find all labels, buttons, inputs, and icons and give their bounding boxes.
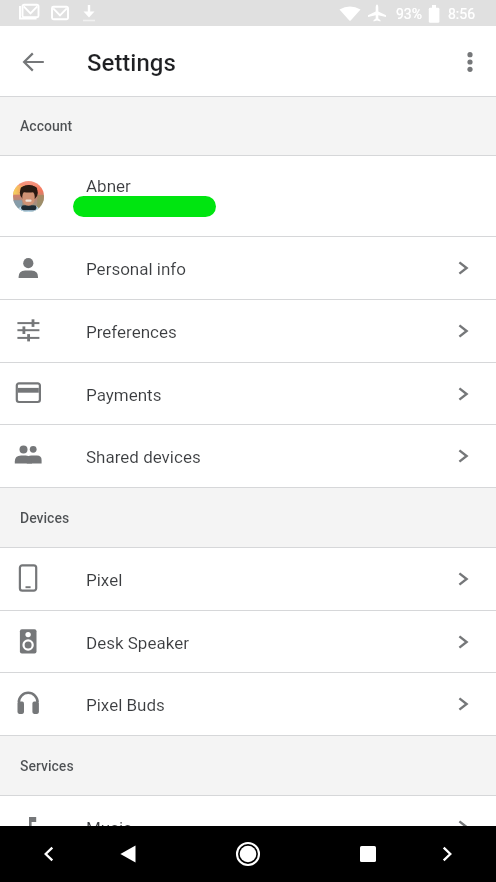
staticText: Settings bbox=[87, 49, 176, 77]
staticText: Personal info bbox=[86, 259, 186, 279]
button[interactable]: Personal info bbox=[0, 237, 496, 299]
button[interactable]: Shared devices bbox=[0, 425, 496, 487]
staticText: Pixel Buds bbox=[86, 695, 165, 715]
staticText: 93% bbox=[396, 6, 422, 22]
staticText: Pixel bbox=[86, 570, 123, 590]
staticText: Preferences bbox=[86, 322, 177, 342]
staticText: Shared devices bbox=[86, 447, 201, 467]
button[interactable]: Music bbox=[0, 796, 496, 858]
button[interactable]: Payments bbox=[0, 363, 496, 424]
button[interactable]: Previous bbox=[21, 826, 77, 882]
button[interactable]: Home bbox=[220, 826, 276, 882]
button[interactable]: Pixel bbox=[0, 548, 496, 610]
staticText: Payments bbox=[86, 385, 162, 405]
button[interactable]: Next bbox=[419, 826, 475, 882]
button[interactable]: Abner bbox=[0, 156, 496, 236]
staticText: Services bbox=[20, 758, 74, 774]
staticText: Abner bbox=[86, 176, 131, 196]
button[interactable]: Back bbox=[10, 38, 58, 86]
staticText: Devices bbox=[20, 510, 70, 526]
staticText: Account bbox=[20, 118, 73, 134]
button[interactable]: Back bbox=[100, 826, 156, 882]
staticText: Desk Speaker bbox=[86, 633, 189, 653]
staticText: 8:56 bbox=[448, 6, 475, 22]
button[interactable]: Preferences bbox=[0, 300, 496, 362]
staticText: Music bbox=[86, 818, 133, 838]
button[interactable]: Desk Speaker bbox=[0, 611, 496, 672]
button[interactable]: Recents bbox=[340, 826, 396, 882]
button[interactable]: More options bbox=[446, 38, 494, 86]
button[interactable]: Pixel Buds bbox=[0, 673, 496, 735]
